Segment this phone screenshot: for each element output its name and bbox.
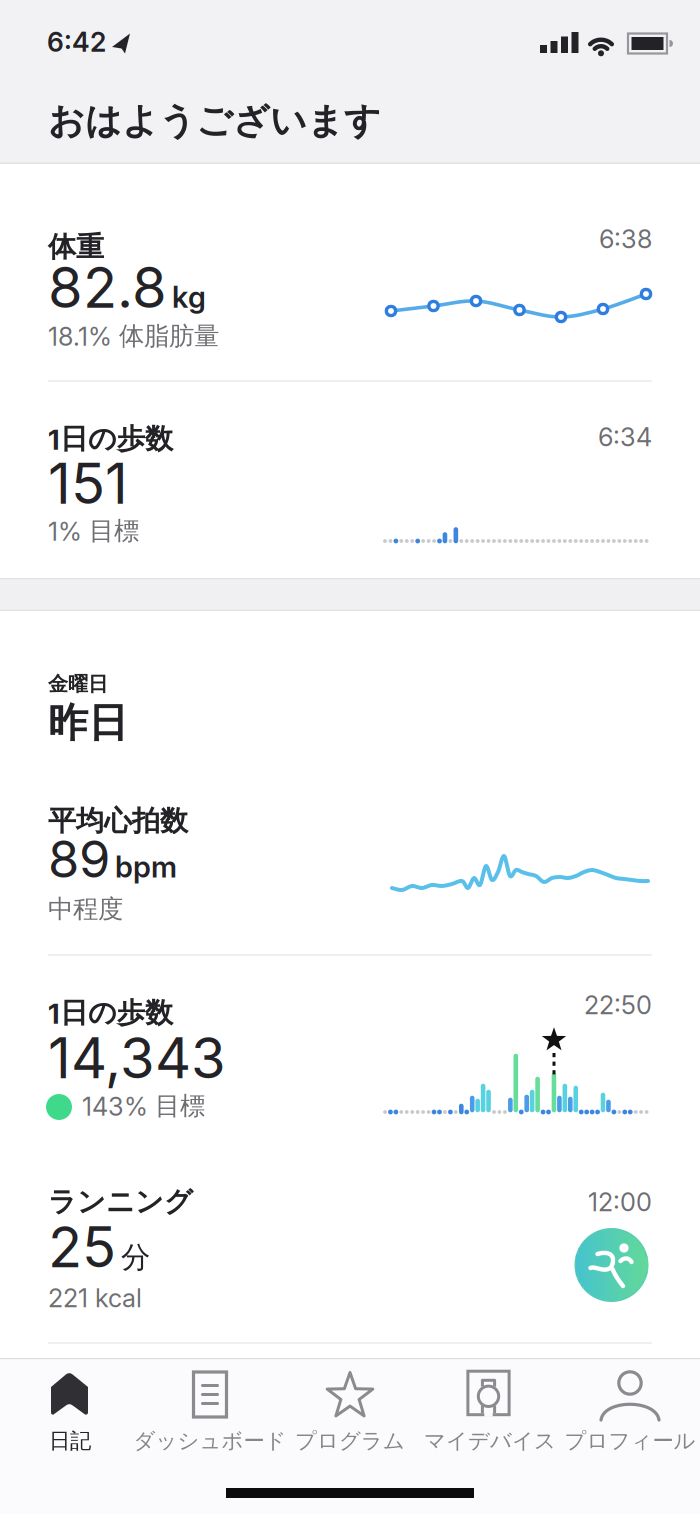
staticText: 82.8 [48,254,167,321]
staticText: kg [172,279,206,315]
staticText: 22:50 [584,990,652,1020]
button[interactable]: ダッシュボード [140,1358,280,1458]
staticText: 体重 [48,229,104,265]
staticText: 25 [48,1213,116,1281]
staticText: 89 [48,828,110,890]
button[interactable]: プログラム [280,1358,420,1458]
staticText: 12:00 [588,1187,652,1217]
staticText: 6:42 [47,26,106,58]
staticText: 18.1% 体脂肪量 [48,320,219,352]
staticText: 6:38 [599,224,652,254]
staticText: 1% 目標 [48,515,139,547]
staticText: 分 [121,1239,150,1276]
button[interactable]: ランニング [0,1144,700,1342]
button[interactable]: 平均心拍数 [0,760,700,954]
staticText: 平均心拍数 [48,803,188,839]
staticText: bpm [115,849,177,884]
staticText: 6:34 [598,422,652,452]
staticText: 日記 [49,1428,91,1454]
staticText: プロフィール [564,1428,695,1454]
staticText: 金曜日 [48,671,108,697]
staticText: 1日の歩数 [48,995,173,1031]
staticText: 昨日 [48,698,128,748]
button[interactable]: マイデバイス [420,1358,560,1458]
staticText: 中程度 [48,893,123,925]
button[interactable]: 1日の歩数 [0,382,700,578]
button[interactable]: 体重 [0,164,700,380]
staticText: ランニング [48,1184,193,1220]
staticText: プログラム [295,1428,405,1454]
staticText: おはようございます [48,98,381,144]
button[interactable]: 追加 [0,0,700,164]
staticText: 1日の歩数 [48,421,173,457]
staticText: ダッシュボード [133,1428,286,1454]
staticText: 143% 目標 [82,1090,205,1122]
staticText: マイデバイス [424,1428,556,1454]
staticText: 221 kcal [48,1283,142,1313]
button[interactable]: プロフィール [560,1358,700,1458]
button[interactable]: 1日の歩数 [0,956,700,1144]
staticText: 151 [48,450,128,517]
button[interactable]: 日記 [0,1358,140,1458]
staticText: 14,343 [48,1024,226,1092]
